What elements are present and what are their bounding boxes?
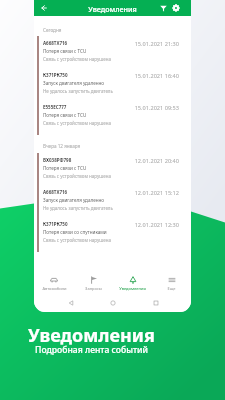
staticText: К371РК750	[43, 221, 68, 227]
button[interactable]: Запросы	[74, 268, 113, 294]
staticText: 12.01.2021 20:40	[43, 157, 179, 165]
staticText: Связь с устройством нарушена	[43, 173, 111, 179]
staticText: Уведомления	[34, 4, 191, 14]
staticText: Подробная лента событий	[16, 344, 167, 356]
staticText: Уведомления	[119, 286, 146, 291]
staticText: Е555ЕС777	[43, 104, 67, 110]
staticText: 12.01.2021 15:12	[43, 189, 179, 197]
button[interactable]: А668ТХ716	[37, 36, 191, 66]
staticText: Потеря связи со спутниками	[43, 229, 107, 235]
staticText: Автомобили	[42, 286, 67, 291]
staticText: Связь с устройством нарушена	[43, 237, 111, 243]
staticText: Потеря связи с TCU	[43, 165, 87, 171]
button[interactable]: К371РК750	[37, 68, 191, 98]
button[interactable]: Filter	[156, 1, 170, 15]
staticText: К371РК750	[43, 72, 68, 78]
staticText: Не удалось запустить двигатель	[43, 205, 113, 211]
staticText: Еще	[167, 286, 176, 291]
button[interactable]: ВХ038РФ798	[37, 153, 191, 183]
staticText: А668ТХ716	[43, 40, 68, 46]
button[interactable]: А668ТХ716	[37, 185, 191, 215]
button[interactable]: Back	[37, 1, 51, 15]
staticText: Запросы	[85, 286, 102, 291]
button[interactable]: Settings	[169, 1, 183, 15]
staticText: Не удалось запустить двигатель	[43, 88, 113, 94]
button[interactable]: Автомобили	[34, 268, 74, 294]
staticText: Вчера 12 января	[43, 143, 81, 149]
staticText: ВХ038РФ798	[43, 157, 72, 163]
staticText: А668ТХ716	[43, 189, 68, 195]
staticText: Запуск двигателя удаленно	[43, 80, 105, 86]
staticText: Уведомления	[16, 323, 167, 348]
staticText: Связь с устройством нарушена	[43, 120, 111, 126]
staticText: Потеря связи с TCU	[43, 112, 87, 118]
staticText: 12.01.2021 12:30	[43, 221, 179, 229]
button[interactable]: К371РК750	[37, 217, 191, 247]
button[interactable]: Back	[64, 296, 77, 309]
button[interactable]: Уведомления	[113, 268, 152, 294]
button[interactable]: Home	[106, 296, 119, 309]
staticText: Связь с устройством нарушена	[43, 56, 111, 62]
staticText: 15.01.2021 16:40	[43, 72, 179, 80]
staticText: 15.01.2021 21:30	[43, 40, 179, 48]
staticText: Сегодня	[43, 27, 62, 33]
staticText: Запуск двигателя удаленно	[43, 197, 105, 203]
button[interactable]: Е555ЕС777	[37, 100, 191, 130]
button[interactable]: Recents	[149, 296, 162, 309]
staticText: 15.01.2021 09:53	[43, 104, 179, 112]
staticText: Потеря связи с TCU	[43, 48, 87, 54]
button[interactable]: Еще	[152, 268, 191, 294]
